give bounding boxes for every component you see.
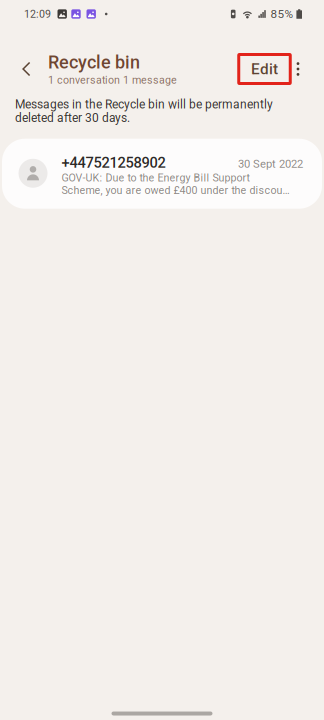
staticText: deleted after 30 days.	[15, 111, 130, 125]
button[interactable]: More options	[289, 50, 307, 88]
button[interactable]: Back	[22, 50, 48, 88]
staticText: Recycle bin	[48, 52, 140, 73]
button[interactable]: +447521258902	[2, 139, 322, 209]
staticText: Scheme, you are owed £400 under the disc…	[61, 184, 289, 197]
staticText: Messages in the Recycle bin will be perm…	[15, 97, 273, 111]
staticText: 85%	[270, 7, 293, 21]
button[interactable]: Edit	[237, 55, 287, 82]
staticText: 30 Sept 2022	[238, 157, 303, 171]
staticText: GOV-UK: Due to the Energy Bill Support	[61, 171, 249, 184]
staticText: 12:09	[24, 8, 51, 20]
staticText: 1 conversation 1 message	[48, 74, 177, 86]
staticText: Edit	[251, 60, 278, 78]
staticText: +447521258902	[61, 154, 165, 171]
